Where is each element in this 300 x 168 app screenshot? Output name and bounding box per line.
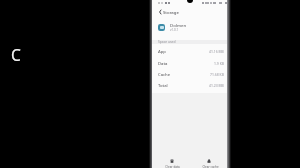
staticText: Data xyxy=(158,61,168,67)
staticText: 71.68 KB xyxy=(210,72,224,77)
button[interactable]: Dolmen xyxy=(152,19,227,35)
staticText: Clear data xyxy=(165,165,180,168)
staticText: Space used xyxy=(158,39,176,43)
staticText: 1.9 KB xyxy=(214,61,224,66)
button[interactable]: Back xyxy=(156,8,164,16)
button[interactable]: App xyxy=(152,46,227,57)
button[interactable]: Clear cache xyxy=(196,157,224,168)
button[interactable]: Data xyxy=(152,58,227,69)
staticText: v1.0.1 xyxy=(170,28,179,32)
staticText: Cache xyxy=(158,72,171,78)
staticText: 41.16 MB xyxy=(209,49,224,54)
staticText: Clear cache xyxy=(202,165,219,168)
staticText: Storage xyxy=(163,9,179,15)
button[interactable]: Clear data xyxy=(158,157,186,168)
staticText: C xyxy=(11,44,21,65)
staticText: App xyxy=(158,49,166,55)
button[interactable]: Cache xyxy=(152,69,227,80)
button[interactable]: Total xyxy=(152,80,227,91)
staticText: Total xyxy=(158,83,168,89)
staticText: 41.23 MB xyxy=(209,83,224,88)
staticText: Dolmen xyxy=(170,22,187,28)
